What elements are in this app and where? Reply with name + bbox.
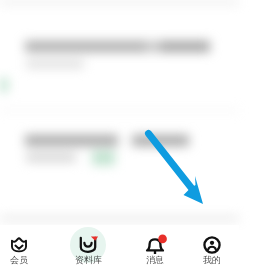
staticText: 我的 [203, 254, 221, 265]
staticText: 消息 [146, 254, 164, 265]
button[interactable]: 消息 [129, 225, 181, 270]
button[interactable]: 我的 [186, 225, 238, 270]
staticText: 资料库 [75, 254, 102, 265]
button[interactable]: 资料库 [62, 225, 114, 270]
button[interactable]: 会员 [0, 225, 45, 270]
staticText: 会员 [10, 254, 28, 265]
